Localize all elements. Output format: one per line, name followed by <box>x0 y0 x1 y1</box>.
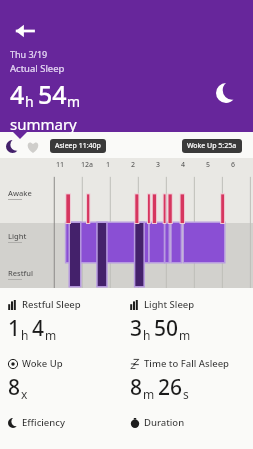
staticText: Thu 3/19 <box>10 48 48 60</box>
button[interactable]: Woke Up <box>8 357 130 402</box>
button[interactable]: Efficiency <box>8 416 130 429</box>
staticText: 4 <box>32 314 45 343</box>
staticText: Light <box>8 231 27 241</box>
staticText: summary <box>10 114 77 134</box>
staticText: m <box>143 386 158 402</box>
staticText: 6 <box>231 160 236 170</box>
staticText: 12a <box>81 160 94 170</box>
staticText: Woke Up <box>22 357 63 370</box>
button[interactable]: Restful Sleep <box>8 298 130 343</box>
staticText: 5 <box>206 160 211 170</box>
staticText: Restful <box>8 268 33 278</box>
staticText: 1 <box>106 160 111 170</box>
staticText: 26 <box>158 373 183 402</box>
staticText: 8 <box>8 373 21 402</box>
staticText: 8 <box>130 373 143 402</box>
button[interactable]: Time to Fall Asleep <box>130 357 253 402</box>
staticText: 2 <box>131 160 136 170</box>
button[interactable]: Light Sleep <box>130 298 253 343</box>
staticText: m <box>45 327 57 343</box>
staticText: 54 <box>38 77 67 111</box>
button[interactable]: Woke Up 5:25a <box>187 141 237 151</box>
staticText: m <box>179 327 191 343</box>
staticText: 3 <box>156 160 161 170</box>
staticText: 4 <box>10 77 25 111</box>
staticText: 4 <box>181 160 186 170</box>
staticText: 3 <box>130 314 143 343</box>
staticText: Asleep 11:40p <box>55 141 101 151</box>
button[interactable]: Asleep 11:40p <box>55 141 101 151</box>
staticText: Restful Sleep <box>22 298 81 311</box>
staticText: 11 <box>56 160 65 170</box>
staticText: Efficiency <box>22 416 65 429</box>
staticText: Awake <box>8 188 32 198</box>
staticText: h <box>21 327 32 343</box>
staticText: x <box>21 386 28 402</box>
staticText: Actual Sleep <box>10 62 65 75</box>
staticText: Duration <box>144 416 185 429</box>
staticText: h <box>143 327 154 343</box>
staticText: s <box>183 386 189 402</box>
other: Sleep <box>213 80 239 106</box>
staticText: Light Sleep <box>144 298 195 311</box>
staticText: Time to Fall Asleep <box>144 357 229 370</box>
button[interactable]: Back <box>8 14 42 48</box>
staticText: Woke Up 5:25a <box>187 141 237 151</box>
button[interactable]: Duration <box>130 416 253 429</box>
staticText: 1 <box>8 314 21 343</box>
staticText: 50 <box>154 314 179 343</box>
staticText: h <box>25 92 38 111</box>
staticText: m <box>67 92 81 111</box>
